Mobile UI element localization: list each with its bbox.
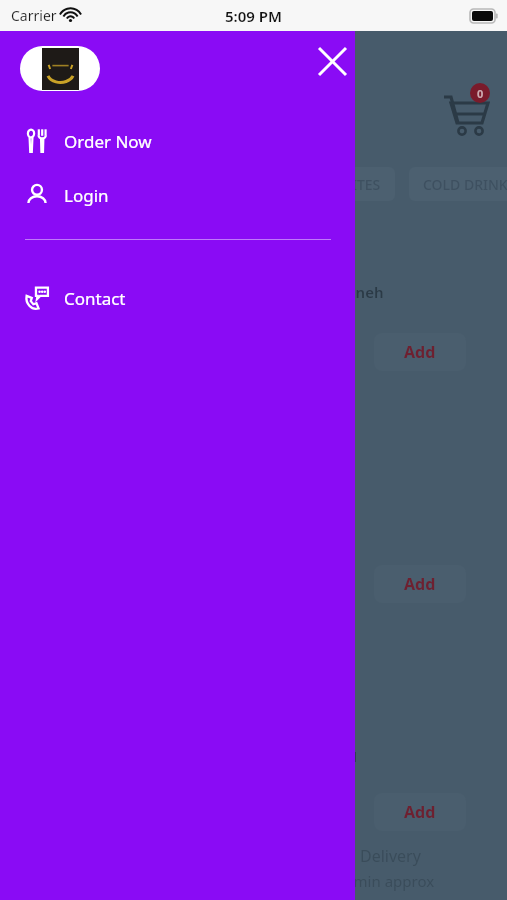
button[interactable]: Add xyxy=(374,793,466,831)
staticText: Login xyxy=(64,184,109,207)
staticText: Add xyxy=(404,801,436,823)
button[interactable]: Order Now xyxy=(0,118,355,164)
staticText: Add xyxy=(404,341,436,363)
staticText: Order Now xyxy=(64,130,152,153)
staticText: Delivery xyxy=(360,845,421,867)
staticText: Carrier xyxy=(11,6,57,25)
button[interactable]: Cart xyxy=(438,83,494,139)
button[interactable]: SNACK BITES xyxy=(280,167,395,201)
button[interactable]: Add xyxy=(374,565,466,603)
staticText: COLD DRINK xyxy=(423,175,507,194)
staticText: Contact xyxy=(64,287,126,310)
staticText: 0min approx xyxy=(345,871,435,891)
staticText: Add xyxy=(404,573,436,595)
button[interactable]: Restaurant logo xyxy=(20,46,100,91)
staticText: Manakish Zaatar w Jebneh xyxy=(190,282,384,302)
button[interactable]: Add xyxy=(374,333,466,371)
staticText: 0 xyxy=(477,86,484,101)
button[interactable]: COLD DRINK xyxy=(409,167,507,201)
button[interactable]: Close menu xyxy=(308,37,356,85)
staticText: 5:09 PM xyxy=(225,6,282,26)
staticText: SNACK BITES xyxy=(294,175,381,194)
button[interactable]: Contact xyxy=(0,275,355,321)
staticText: LAHEM BAAJIN xyxy=(246,746,358,766)
button[interactable]: Login xyxy=(0,172,355,218)
